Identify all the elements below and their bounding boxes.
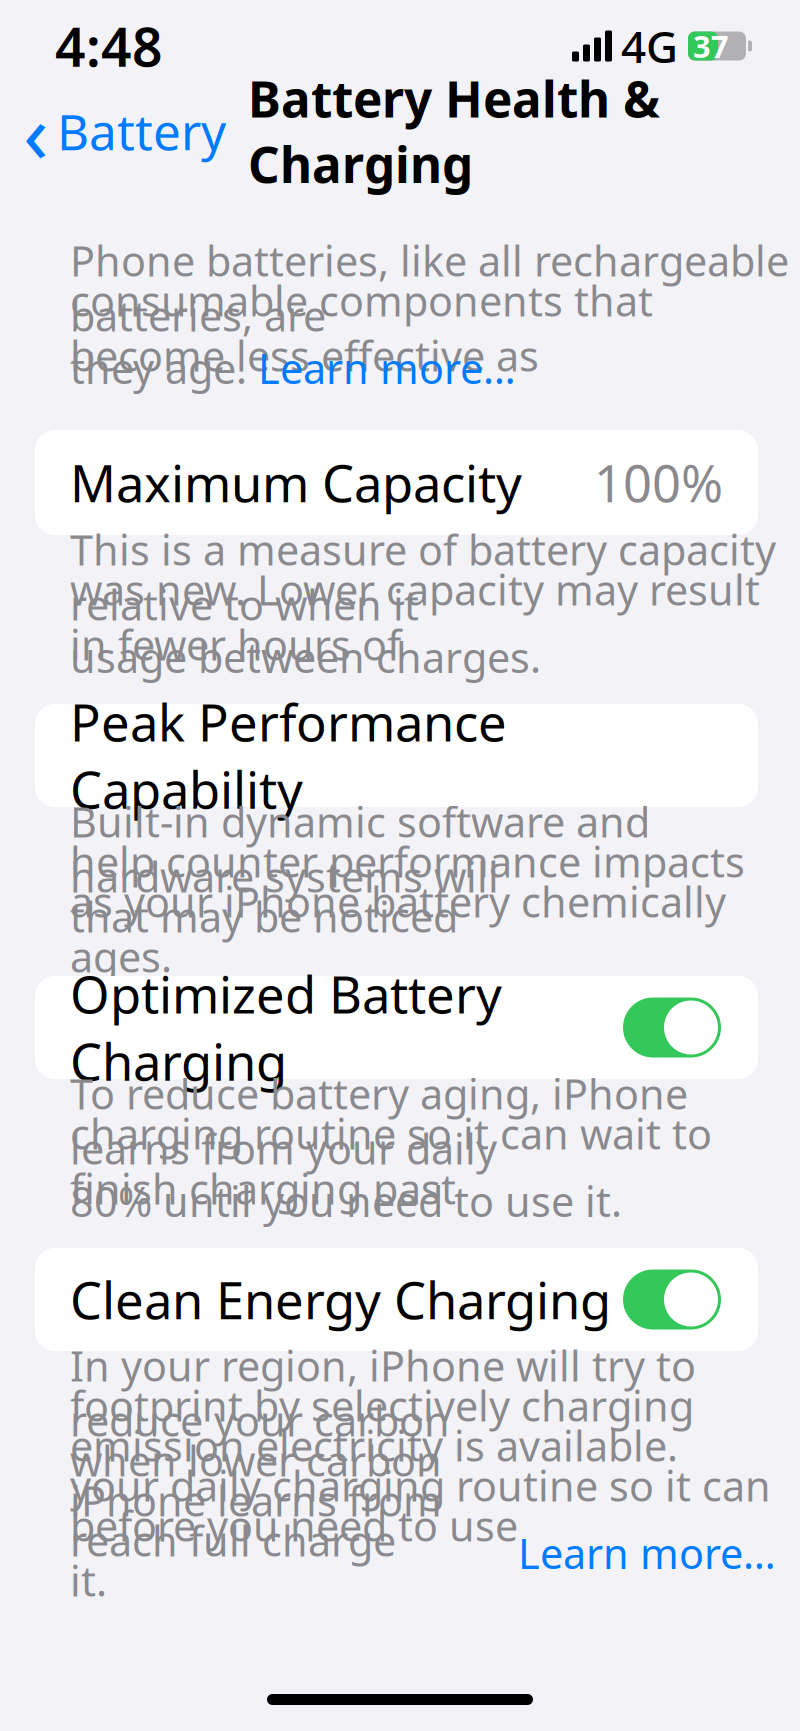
staticText: was new. Lower capacity may result in fe… bbox=[70, 562, 760, 672]
staticText: they age. bbox=[70, 341, 258, 395]
staticText: This is a measure of battery capacity re… bbox=[70, 522, 776, 632]
staticText: Battery bbox=[57, 98, 226, 164]
staticText: To reduce battery aging, iPhone learns f… bbox=[70, 1066, 688, 1176]
staticText: footprint by selectively charging when l… bbox=[70, 1378, 694, 1488]
staticText: 37 bbox=[693, 26, 729, 66]
button[interactable]: Peak Performance Capability bbox=[35, 704, 758, 807]
staticText: Phone batteries, like all rechargeable b… bbox=[70, 233, 789, 343]
button[interactable]: Clean Energy Charging bbox=[35, 1248, 758, 1351]
staticText: emission electricity is available. iPhon… bbox=[70, 1418, 678, 1528]
staticText: Battery Health & Charging bbox=[248, 65, 660, 196]
staticText: Peak Performance Capability bbox=[70, 688, 507, 823]
staticText: Optimized Battery Charging bbox=[70, 960, 502, 1095]
staticText: as your iPhone battery chemically ages. bbox=[70, 874, 726, 984]
button[interactable]: Optimized Battery Charging bbox=[35, 976, 758, 1079]
staticText: help counter performance impacts that ma… bbox=[70, 834, 745, 944]
staticText: usage between charges. bbox=[70, 630, 541, 684]
staticText: before you need to use it. bbox=[70, 1498, 518, 1608]
staticText: Maximum Capacity bbox=[70, 449, 522, 516]
staticText: Learn more… bbox=[258, 341, 516, 395]
staticText: Learn more… bbox=[518, 1526, 776, 1580]
staticText: 100% bbox=[594, 449, 723, 516]
staticText: your daily charging routine so it can re… bbox=[70, 1458, 771, 1568]
button[interactable]: Learn more… bbox=[518, 1526, 776, 1580]
staticText: Built-in dynamic software and hardware s… bbox=[70, 794, 650, 904]
button[interactable]: ‹ bbox=[0, 96, 240, 166]
staticText: consumable components that become less e… bbox=[70, 273, 653, 383]
staticText: charging routine so it can wait to finis… bbox=[70, 1106, 712, 1216]
staticText: 4:48 bbox=[55, 11, 163, 81]
staticText: ‹ bbox=[23, 76, 49, 186]
staticText: 80% until you need to use it. bbox=[70, 1174, 622, 1228]
staticText: Clean Energy Charging bbox=[70, 1266, 611, 1333]
button[interactable]: Learn more… bbox=[258, 341, 516, 395]
button[interactable]: Maximum Capacity bbox=[35, 430, 758, 535]
staticText: 4G bbox=[621, 17, 678, 75]
staticText: In your region, iPhone will try to reduc… bbox=[70, 1338, 696, 1448]
